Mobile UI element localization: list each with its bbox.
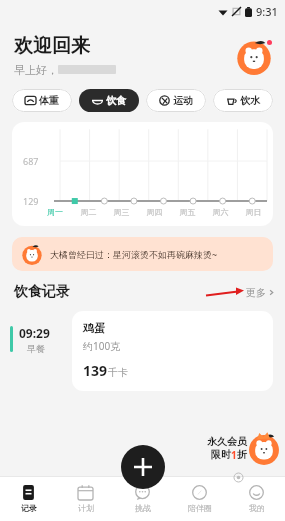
staticText: 挑战 xyxy=(135,503,151,513)
button[interactable]: 挑战 xyxy=(114,477,171,521)
staticText: 记录 xyxy=(21,503,37,513)
button[interactable]: 饮食 xyxy=(79,89,139,112)
button[interactable]: 陪伴圈 xyxy=(171,477,228,521)
staticText: 体重 xyxy=(39,94,59,107)
staticText: 计划 xyxy=(78,503,94,513)
button[interactable]: 鸡蛋 xyxy=(72,311,273,391)
button[interactable]: 687 xyxy=(12,122,273,226)
staticText: 鸡蛋 xyxy=(83,321,105,335)
staticText: 折 xyxy=(237,448,247,461)
button[interactable]: 体重 xyxy=(12,89,72,112)
button[interactable]: 计划 xyxy=(57,477,114,521)
button[interactable]: 头像 xyxy=(235,37,273,75)
button[interactable]: 饮水 xyxy=(213,89,273,112)
staticText: 687 xyxy=(23,155,39,167)
button[interactable]: 更多 xyxy=(246,286,275,299)
button[interactable]: 关闭 xyxy=(234,473,243,482)
staticText: 约100克 xyxy=(83,339,121,353)
staticText: 周六 xyxy=(204,207,237,217)
staticText: 运动 xyxy=(173,94,193,107)
staticText: 饮食 xyxy=(106,94,126,107)
staticText: 早餐 xyxy=(27,343,45,354)
button[interactable]: 我的 xyxy=(228,477,285,521)
staticText: 更多 xyxy=(246,286,266,299)
staticText: 大橘曾经曰过：星河滚烫不如再碗麻辣烫~ xyxy=(50,248,218,260)
staticText: 周四 xyxy=(138,207,171,217)
staticText: 饮食记录 xyxy=(14,283,70,301)
button[interactable]: 运动 xyxy=(146,89,206,112)
staticText: 周一 xyxy=(38,207,72,217)
button[interactable]: 会员优惠 xyxy=(247,431,281,465)
button[interactable]: 添加记录 xyxy=(121,445,165,489)
staticText: 9:31 xyxy=(256,4,278,19)
staticText: 1 xyxy=(231,448,237,462)
staticText: 早上好， xyxy=(14,63,58,77)
button[interactable]: 记录 xyxy=(0,477,57,521)
staticText: 周二 xyxy=(72,207,105,217)
staticText: 周日 xyxy=(237,207,270,217)
staticText: 饮水 xyxy=(240,94,260,107)
button[interactable]: 大橘曾经曰过：星河滚烫不如再碗麻辣烫~ xyxy=(12,237,273,271)
staticText: 永久会员 xyxy=(207,435,247,448)
staticText: 欢迎回来 xyxy=(14,34,90,58)
staticText: 千卡 xyxy=(108,366,128,379)
staticText: 周三 xyxy=(105,207,138,217)
staticText: 09:29 xyxy=(19,325,50,341)
staticText: 限时 xyxy=(211,448,231,461)
staticText: 周五 xyxy=(171,207,204,217)
staticText: 129 xyxy=(23,195,39,207)
staticText: 陪伴圈 xyxy=(188,503,212,513)
staticText: 139 xyxy=(83,361,108,380)
staticText: 我的 xyxy=(249,503,265,513)
